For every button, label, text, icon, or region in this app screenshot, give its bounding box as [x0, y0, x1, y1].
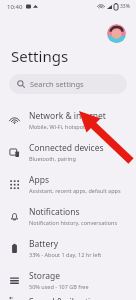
staticText: 33% - About 1 day, 12 hr left: [29, 251, 102, 258]
staticText: Mobile, Wi-Fi, hotspot: [29, 123, 86, 130]
staticText: Storage: [29, 270, 61, 282]
staticText: Sound & vibration: [29, 296, 101, 300]
staticText: Connected devices: [29, 142, 104, 154]
staticText: Network & internet: [29, 110, 106, 122]
staticText: 33%: [120, 3, 130, 10]
button[interactable]: Notifications: [0, 200, 136, 232]
staticText: Assistant, recent apps, default apps: [29, 187, 121, 194]
staticText: Search settings: [30, 79, 84, 89]
button[interactable]: Battery: [0, 232, 136, 264]
button[interactable]: Connected devices: [0, 136, 136, 168]
staticText: Battery: [29, 238, 59, 250]
staticText: Notification history, conversations: [29, 219, 118, 226]
staticText: 10:40: [7, 3, 23, 11]
staticText: Bluetooth, pairing: [29, 155, 76, 162]
button[interactable]: Sound & vibration: [0, 296, 136, 300]
button[interactable]: Account: [107, 24, 126, 43]
staticText: Notifications: [29, 206, 80, 218]
button[interactable]: Apps: [0, 168, 136, 200]
staticText: 50% used - 107 GB free: [29, 283, 89, 290]
button[interactable]: Search settings: [9, 74, 127, 94]
button[interactable]: Storage: [0, 264, 136, 296]
staticText: Settings: [11, 46, 69, 66]
button[interactable]: Network & internet: [0, 104, 136, 136]
staticText: Apps: [29, 174, 49, 186]
